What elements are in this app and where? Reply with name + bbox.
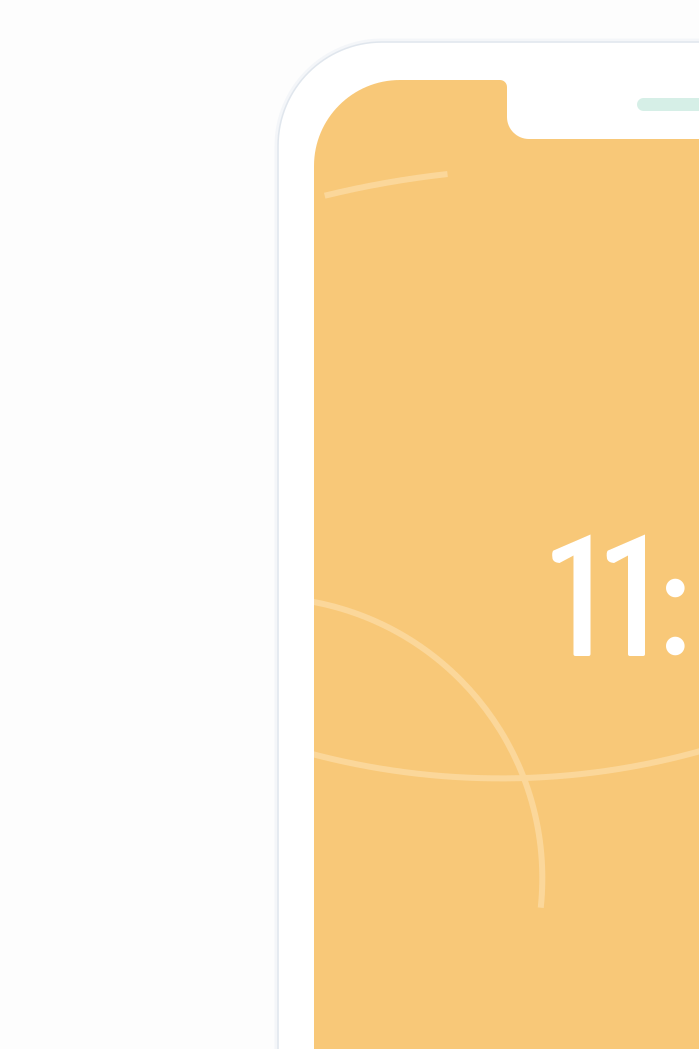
button[interactable]: Lock screen, 11:00 — [314, 80, 699, 1049]
